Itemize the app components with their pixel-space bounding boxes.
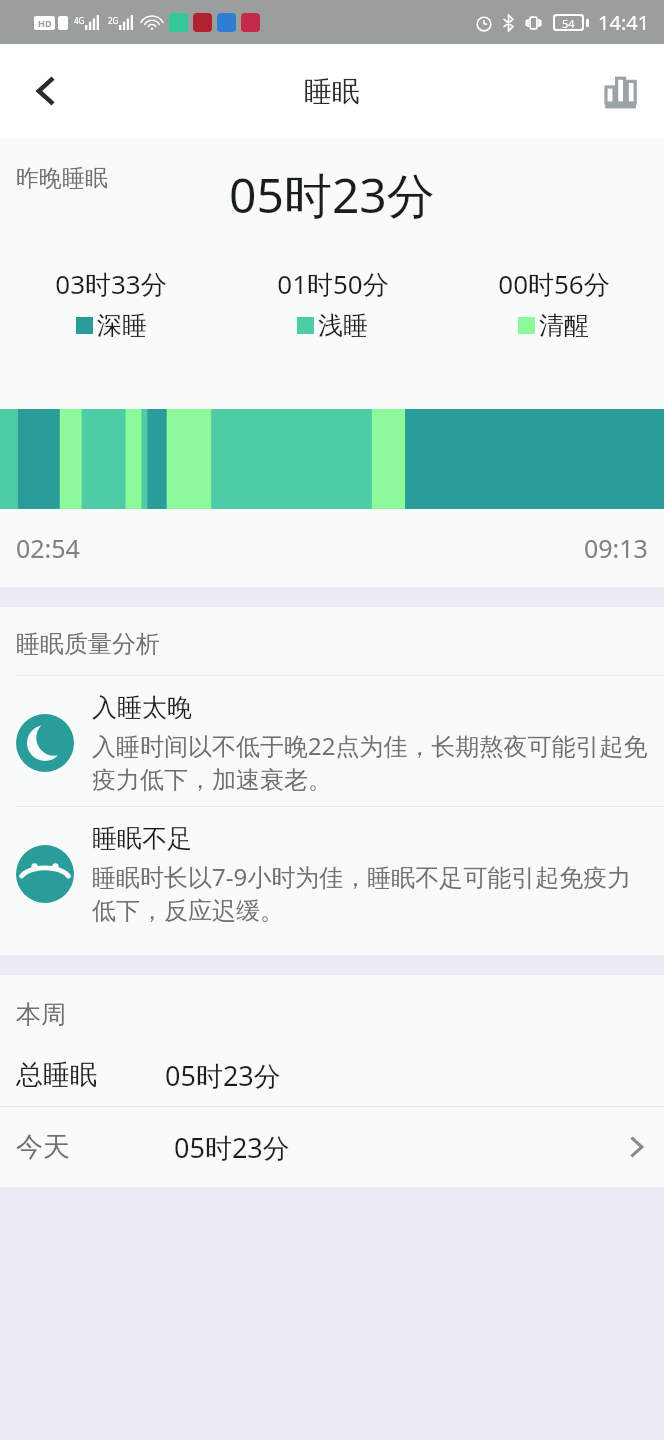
staticText: 4G <box>74 15 85 26</box>
staticText: 01时50分 <box>277 266 389 302</box>
staticText: 54 <box>562 16 575 29</box>
staticText: 00时56分 <box>498 266 610 302</box>
button[interactable]: 入睡太晚 <box>0 676 664 806</box>
staticText: 深睡 <box>97 310 147 341</box>
button[interactable]: Statistics <box>590 59 654 123</box>
staticText: 入睡时间以不低于晚22点为佳，长期熬夜可能引起免 疫力低下，加速衰老。 <box>92 729 648 796</box>
staticText: 入睡太晚 <box>92 692 192 723</box>
staticText: 05时23分 <box>229 162 435 228</box>
staticText: 今天 <box>16 1130 70 1164</box>
button[interactable]: 今天 <box>0 1107 664 1187</box>
staticText: 睡眠质量分析 <box>16 629 160 659</box>
staticText: 浅睡 <box>318 310 368 341</box>
staticText: 05时23分 <box>165 1057 281 1094</box>
staticText: 清醒 <box>539 310 589 341</box>
staticText: 睡眠 <box>304 74 360 109</box>
button[interactable]: Back <box>10 55 82 127</box>
staticText: 睡眠时长以7-9小时为佳，睡眠不足可能引起免疫力 低下，反应迟缓。 <box>92 860 632 927</box>
staticText: 14:41 <box>598 9 650 36</box>
staticText: HD <box>38 17 52 29</box>
staticText: 昨晚睡眠 <box>16 164 108 193</box>
staticText: 总睡眠 <box>16 1058 97 1092</box>
button[interactable]: 睡眠不足 <box>0 807 664 937</box>
staticText: 02:54 <box>16 531 80 565</box>
button[interactable]: 总睡眠 <box>0 1044 664 1106</box>
staticText: 睡眠不足 <box>92 823 192 854</box>
staticText: 2G <box>108 15 119 26</box>
staticText: 09:13 <box>584 531 648 565</box>
staticText: 本周 <box>16 999 66 1030</box>
staticText: 03时33分 <box>55 266 167 302</box>
staticText: 05时23分 <box>174 1129 290 1166</box>
